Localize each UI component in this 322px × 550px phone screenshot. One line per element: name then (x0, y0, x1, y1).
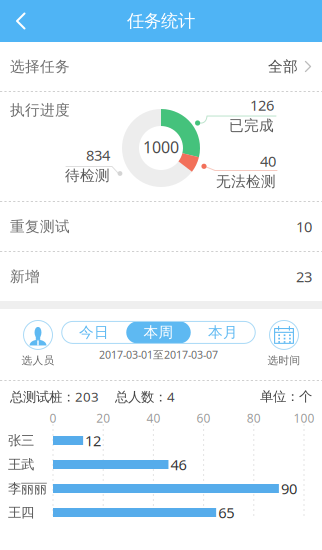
staticText: 本月 (208, 323, 238, 341)
staticText: 12 (85, 431, 101, 450)
staticText: 10 (296, 217, 312, 236)
staticText: 100 (293, 410, 314, 426)
staticText: 李丽丽 (8, 480, 47, 497)
staticText: 80 (247, 410, 261, 426)
staticText: 全部 (268, 57, 298, 75)
staticText: 20 (96, 410, 110, 426)
staticText: 单位：个 (260, 388, 312, 405)
staticText: 王武 (8, 456, 34, 473)
button[interactable]: 今日 (62, 321, 126, 343)
staticText: 90 (281, 479, 297, 498)
staticText: 新增 (10, 267, 40, 285)
staticText: 1000 (143, 136, 179, 158)
staticText: 23 (296, 267, 312, 286)
button[interactable]: 选时间 (267, 320, 300, 367)
button[interactable]: 本周 (126, 321, 191, 343)
staticText: 待检测 (65, 167, 110, 185)
staticText: 重复测试 (10, 217, 70, 235)
staticText: 无法检测 (216, 173, 276, 191)
staticText: 46 (170, 455, 186, 474)
staticText: 834 (86, 145, 110, 165)
staticText: 任务统计 (127, 10, 195, 32)
staticText: 王四 (8, 504, 34, 521)
staticText: 0 (49, 410, 56, 426)
button[interactable]: 选择任务 (0, 42, 322, 91)
staticText: 张三 (8, 432, 34, 449)
staticText: 65 (218, 503, 234, 522)
staticText: 40 (260, 151, 276, 171)
staticText: 执行进度 (10, 101, 70, 119)
staticText: 总测试桩：203 (10, 388, 99, 405)
staticText: 2017-03-01至2017-03-07 (99, 347, 218, 362)
staticText: 总人数：4 (115, 388, 175, 405)
staticText: 本周 (143, 323, 173, 341)
button[interactable]: 返回 (0, 0, 42, 42)
staticText: 126 (250, 95, 274, 115)
staticText: 今日 (79, 323, 109, 341)
staticText: 选人员 (21, 354, 54, 367)
staticText: 选时间 (267, 354, 300, 367)
staticText: 40 (146, 410, 160, 426)
staticText: 选择任务 (10, 57, 70, 75)
staticText: 已完成 (229, 117, 274, 135)
staticText: 60 (197, 410, 211, 426)
button[interactable]: 选人员 (21, 320, 54, 367)
button[interactable]: 本月 (191, 321, 255, 343)
